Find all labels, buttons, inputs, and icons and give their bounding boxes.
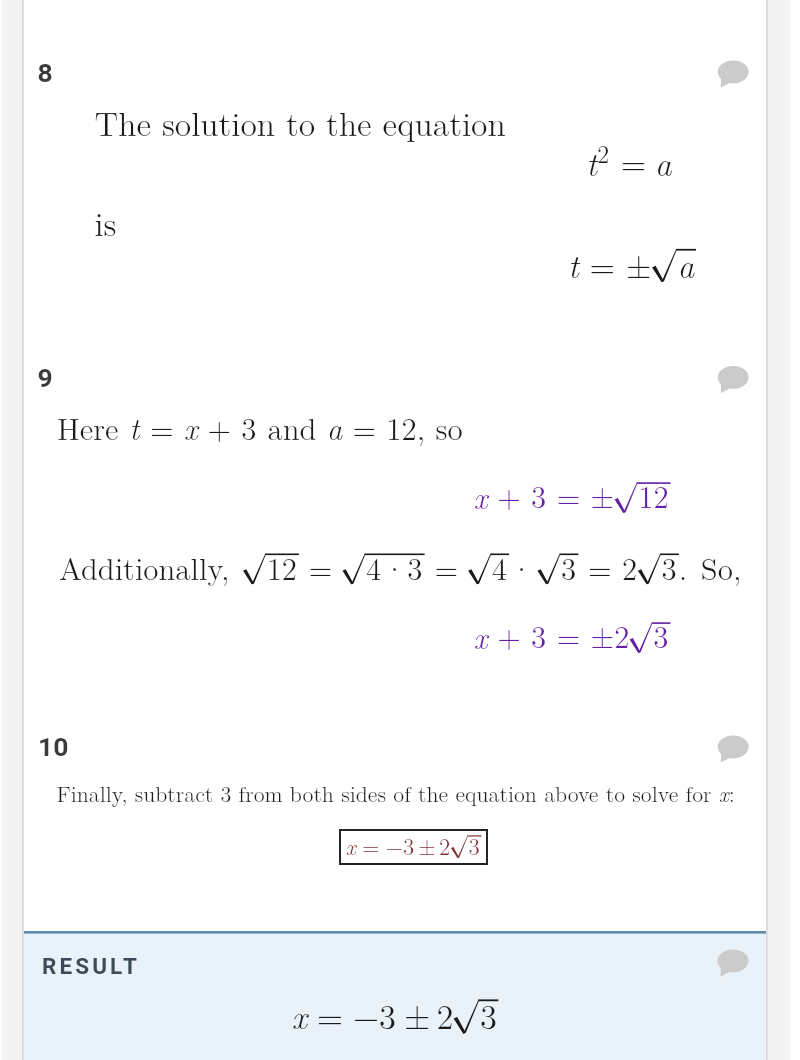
button[interactable]: Comment on result	[714, 946, 752, 978]
button[interactable]: Comment on step 9	[714, 362, 752, 394]
button[interactable]: Comment on step 8	[714, 56, 752, 88]
button[interactable]: Comment on step 10	[714, 731, 752, 763]
